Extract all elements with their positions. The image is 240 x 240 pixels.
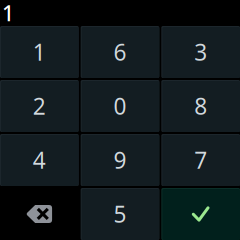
staticText: 1: [2, 0, 14, 27]
button[interactable]: 1: [0, 26, 79, 78]
button[interactable]: 8: [161, 80, 240, 132]
staticText: 0: [113, 91, 126, 121]
staticText: 6: [113, 37, 126, 67]
staticText: 2: [33, 91, 46, 121]
button[interactable]: Delete: [0, 188, 79, 240]
staticText: 1: [33, 37, 46, 67]
button[interactable]: 7: [161, 134, 240, 186]
staticText: 9: [113, 145, 126, 175]
staticText: 7: [194, 145, 207, 175]
button[interactable]: 0: [81, 80, 159, 132]
staticText: 4: [33, 145, 46, 175]
staticText: 8: [194, 91, 207, 121]
button[interactable]: Confirm: [161, 188, 240, 240]
staticText: 5: [113, 199, 126, 229]
button[interactable]: 5: [81, 188, 159, 240]
button[interactable]: 9: [81, 134, 159, 186]
button[interactable]: 2: [0, 80, 79, 132]
button[interactable]: 6: [81, 26, 159, 78]
staticText: 3: [194, 37, 207, 67]
button[interactable]: 4: [0, 134, 79, 186]
button[interactable]: 3: [161, 26, 240, 78]
